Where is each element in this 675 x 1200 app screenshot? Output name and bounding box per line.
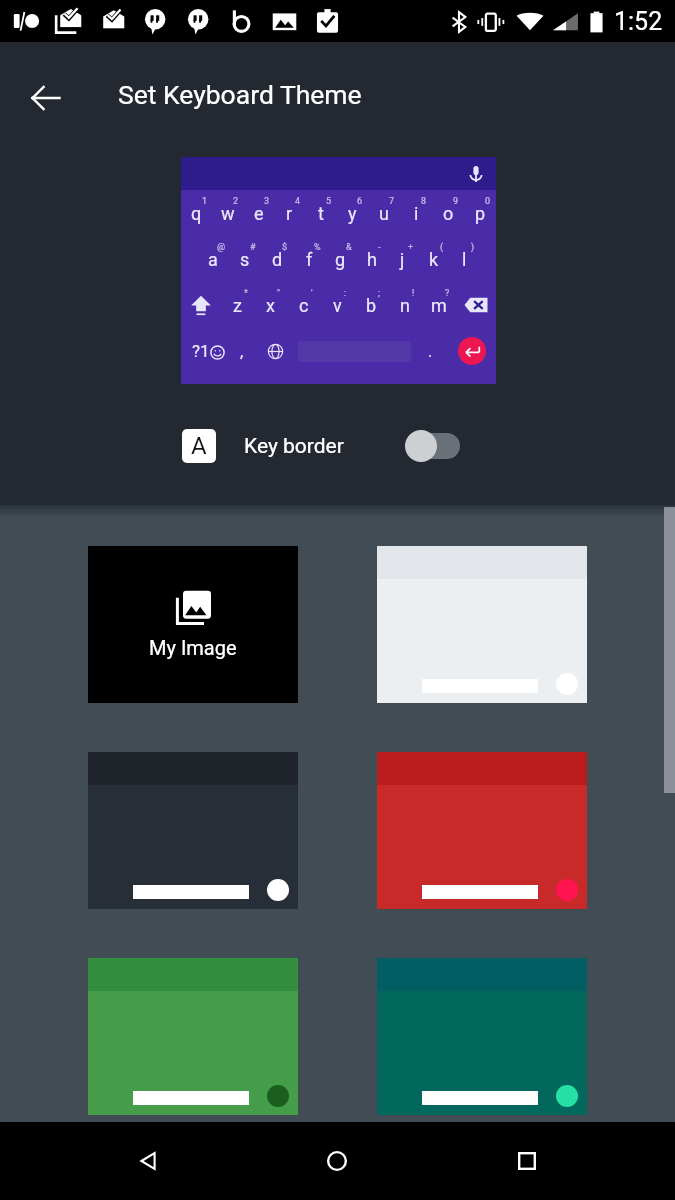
staticText: 4 (295, 196, 301, 207)
staticText: f (306, 249, 313, 270)
staticText: y (348, 203, 357, 224)
staticText: @ (217, 242, 226, 253)
staticText: l (462, 249, 467, 270)
staticText: b (366, 295, 377, 316)
staticText: g (335, 249, 346, 270)
staticText: + (408, 242, 414, 253)
staticText: 2 (233, 196, 239, 207)
staticText: 6 (357, 196, 363, 207)
staticText: v (333, 295, 342, 316)
staticText: m (431, 295, 447, 316)
button[interactable]: Back (104, 1122, 192, 1200)
staticText: A (191, 432, 207, 460)
staticText: # (250, 242, 256, 253)
button[interactable] (88, 958, 298, 1115)
staticText: o (443, 203, 454, 224)
button[interactable] (88, 752, 298, 909)
staticText: 5 (326, 196, 332, 207)
staticText: a (208, 249, 218, 270)
staticText: 1:52 (614, 7, 663, 36)
staticText: u (379, 203, 389, 224)
staticText: : (344, 288, 347, 299)
button[interactable]: Home (293, 1122, 381, 1200)
staticText: $ (282, 242, 288, 253)
staticText: c (299, 295, 309, 316)
staticText: d (272, 249, 283, 270)
staticText: ?1 (192, 341, 210, 361)
staticText: p (475, 203, 486, 224)
staticText: 8 (421, 196, 427, 207)
staticText: h (367, 249, 377, 270)
staticText: 1 (202, 196, 208, 207)
staticText: k (429, 249, 439, 270)
staticText: " (277, 288, 280, 299)
staticText: ? (445, 288, 450, 299)
button[interactable] (377, 958, 587, 1115)
staticText: My Image (149, 636, 237, 659)
staticText: n (400, 295, 410, 316)
button[interactable] (377, 546, 587, 703)
staticText: z (233, 295, 242, 316)
staticText: 3 (264, 196, 270, 207)
staticText: r (286, 203, 293, 224)
button[interactable]: Back (22, 74, 70, 122)
staticText: 9 (453, 196, 459, 207)
button[interactable]: My Image (88, 546, 298, 703)
staticText: s (240, 249, 250, 270)
staticText: - (378, 242, 381, 253)
staticText: & (346, 242, 352, 253)
staticText: t (318, 203, 324, 224)
button[interactable] (377, 752, 587, 909)
staticText: % (314, 242, 321, 253)
staticText: * (244, 288, 248, 299)
staticText: ) (471, 242, 475, 253)
staticText: w (221, 203, 235, 224)
staticText: q (191, 203, 202, 224)
staticText: ' (311, 288, 313, 299)
button[interactable]: Recents (483, 1122, 571, 1200)
staticText: j (400, 249, 405, 270)
staticText: ; (378, 288, 380, 299)
staticText: e (254, 203, 264, 224)
staticText: ! (412, 288, 415, 299)
staticText: , (240, 342, 244, 361)
staticText: Key border (244, 434, 344, 459)
staticText: . (428, 342, 433, 361)
button[interactable]: Key border toggle (405, 429, 460, 463)
staticText: 7 (389, 196, 395, 207)
staticText: x (266, 295, 275, 316)
staticText: Set Keyboard Theme (118, 79, 362, 110)
staticText: i (414, 203, 419, 224)
staticText: 0 (485, 196, 491, 207)
staticText: ( (440, 242, 444, 253)
